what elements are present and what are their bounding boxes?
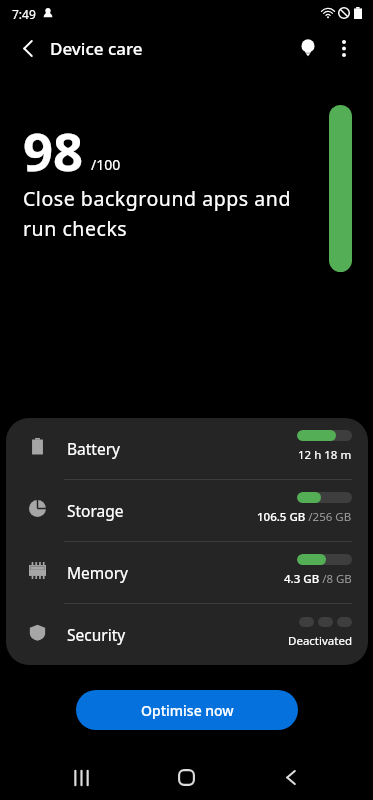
button[interactable]: Security — [6, 604, 368, 665]
staticText: Battery — [67, 438, 121, 459]
staticText: 98 — [23, 115, 84, 187]
staticText: Memory — [67, 562, 128, 583]
button[interactable]: Recent apps — [55, 757, 107, 800]
button[interactable]: Battery — [6, 418, 368, 479]
button[interactable]: Storage — [6, 480, 368, 541]
staticText: Storage — [67, 500, 124, 521]
staticText: 7:49 — [12, 6, 36, 22]
staticText: 4.3 GB /8 GB — [284, 571, 352, 587]
button[interactable]: Memory — [6, 542, 368, 603]
staticText: /100 — [91, 155, 121, 174]
staticText: 106.5 GB /256 GB — [257, 509, 352, 525]
button[interactable]: Back — [265, 757, 317, 800]
staticText: 12 h 18 m — [298, 447, 352, 463]
staticText: Device care — [50, 37, 143, 60]
staticText: Optimise now — [141, 701, 234, 720]
staticText: Close background apps and run checks — [23, 185, 291, 241]
button[interactable]: Navigate up — [7, 27, 49, 69]
staticText: Security — [67, 624, 126, 645]
button[interactable]: Tips — [288, 28, 328, 68]
button[interactable]: Optimise now — [76, 690, 298, 730]
button[interactable]: More options — [324, 28, 364, 68]
staticText: Deactivated — [288, 633, 352, 649]
button[interactable]: Home — [160, 757, 212, 800]
